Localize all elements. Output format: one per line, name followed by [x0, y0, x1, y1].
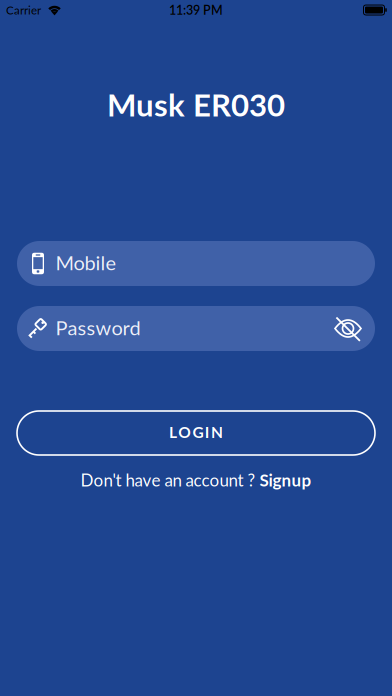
staticText: Don't have an account ? [80, 470, 259, 490]
button[interactable]: Login [17, 411, 375, 455]
staticText: Mobile [55, 250, 116, 274]
staticText: I [205, 423, 210, 441]
staticText: O [178, 423, 191, 441]
staticText: N [211, 423, 223, 441]
button[interactable]: Password [17, 306, 375, 351]
staticText: Password [55, 315, 140, 339]
button[interactable]: Signup [259, 470, 311, 490]
button[interactable]: Mobile [17, 241, 375, 286]
staticText: Signup [259, 470, 311, 490]
staticText: L [169, 423, 177, 441]
button[interactable]: Show password [334, 315, 362, 341]
staticText: Carrier [6, 3, 41, 17]
staticText: Musk ER030 [107, 86, 285, 123]
staticText: 11:39 PM [169, 2, 223, 17]
staticText: G [192, 423, 203, 441]
